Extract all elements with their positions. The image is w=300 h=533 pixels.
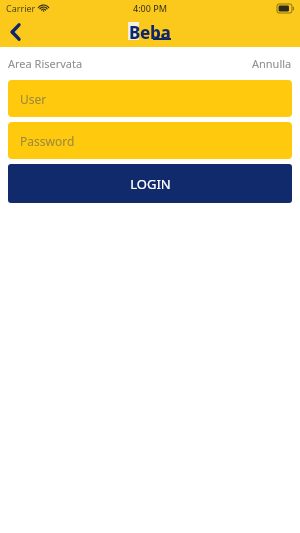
staticText: Carrier — [6, 2, 36, 14]
staticText: Password — [20, 133, 75, 149]
button[interactable]: Password — [8, 122, 292, 159]
staticText: 4:00 PM — [133, 2, 167, 14]
staticText: Annulla — [252, 56, 292, 71]
button[interactable]: Annulla — [244, 50, 300, 77]
staticText: Beba — [129, 21, 171, 41]
button[interactable]: Back — [0, 16, 30, 47]
staticText: LOGIN — [130, 175, 171, 193]
button[interactable]: User — [8, 80, 292, 117]
button[interactable]: LOGIN — [8, 164, 292, 203]
staticText: Area Riservata — [8, 56, 83, 71]
staticText: User — [20, 91, 47, 107]
